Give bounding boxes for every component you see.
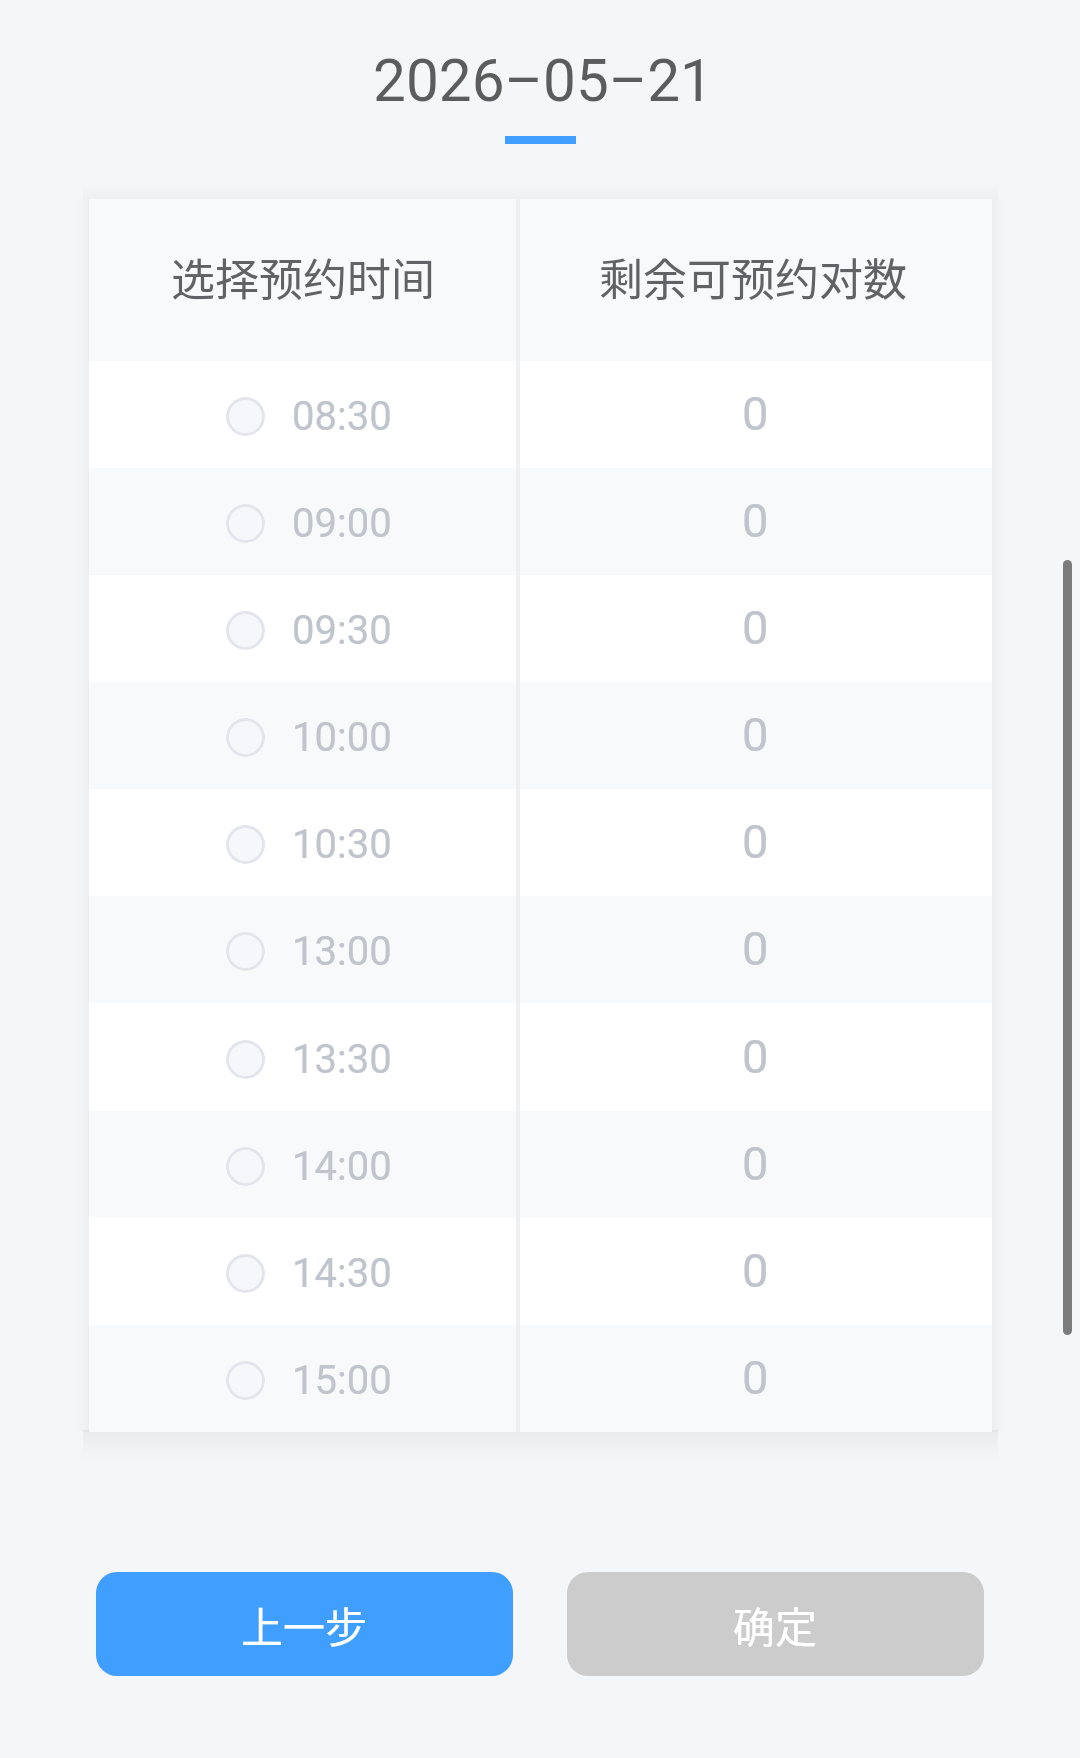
- button[interactable]: Select 14:30: [89, 1218, 992, 1325]
- staticText: 0: [742, 1243, 769, 1298]
- other: Select 10:30: [226, 825, 265, 864]
- staticText: 13:00: [292, 928, 392, 975]
- button[interactable]: 上一步: [96, 1572, 513, 1676]
- staticText: 0: [742, 1029, 769, 1084]
- staticText: 上一步: [241, 1594, 368, 1655]
- button[interactable]: Select 13:30: [89, 1003, 992, 1111]
- staticText: 15:00: [292, 1357, 392, 1404]
- other: Select 13:00: [226, 932, 265, 971]
- other: Select 13:30: [226, 1040, 265, 1079]
- staticText: 09:00: [292, 500, 392, 547]
- button[interactable]: Select 15:00: [89, 1325, 992, 1432]
- staticText: 选择预约时间: [171, 245, 435, 309]
- staticText: 0: [742, 493, 769, 548]
- button[interactable]: Select 13:00: [89, 896, 992, 1003]
- other: Scroll position: [1063, 560, 1072, 1335]
- button[interactable]: 确定: [567, 1572, 984, 1676]
- staticText: 0: [742, 707, 769, 762]
- staticText: 08:30: [292, 393, 392, 440]
- staticText: 14:00: [292, 1143, 392, 1190]
- staticText: 0: [742, 1136, 769, 1191]
- staticText: 0: [742, 814, 769, 869]
- staticText: 13:30: [292, 1036, 392, 1083]
- other: Select 15:00: [226, 1361, 265, 1400]
- staticText: 确定: [733, 1594, 818, 1655]
- staticText: 0: [742, 1350, 769, 1405]
- other: Select 10:00: [226, 718, 265, 757]
- button[interactable]: Select 10:30: [89, 789, 992, 896]
- staticText: 0: [742, 386, 769, 441]
- button[interactable]: Select 14:00: [89, 1111, 992, 1218]
- button[interactable]: Select 09:30: [89, 575, 992, 682]
- staticText: 10:30: [292, 821, 392, 868]
- staticText: 0: [742, 600, 769, 655]
- other: Select 09:30: [226, 611, 265, 650]
- other: Select 14:00: [226, 1147, 265, 1186]
- other: Select 09:00: [226, 504, 265, 543]
- staticText: 09:30: [292, 607, 392, 654]
- staticText: 0: [742, 921, 769, 976]
- staticText: 14:30: [292, 1250, 392, 1297]
- staticText: 10:00: [292, 714, 392, 761]
- button[interactable]: Select 09:00: [89, 468, 992, 575]
- other: Select 14:30: [226, 1254, 265, 1293]
- other: Select 08:30: [226, 397, 265, 436]
- staticText: 2026–05–21: [373, 47, 713, 116]
- staticText: 剩余可预约对数: [599, 245, 907, 309]
- button[interactable]: Select 08:30: [89, 361, 992, 468]
- button[interactable]: Select 10:00: [89, 682, 992, 789]
